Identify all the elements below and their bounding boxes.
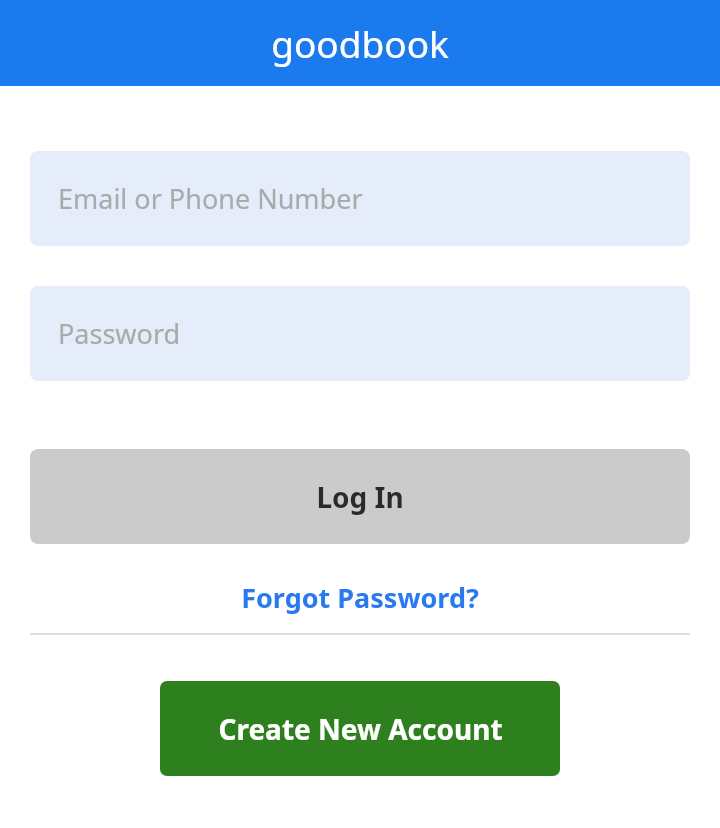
staticText: Create New Account (218, 710, 503, 748)
staticText: Forgot Password? (241, 579, 479, 616)
button[interactable]: Password (30, 286, 690, 381)
button[interactable]: Email or Phone Number (30, 151, 690, 246)
staticText: Password (58, 315, 181, 352)
button[interactable]: Forgot Password? (30, 569, 690, 625)
staticText: Email or Phone Number (58, 180, 363, 217)
staticText: Log In (316, 478, 404, 516)
button[interactable]: Log In (30, 449, 690, 544)
button[interactable]: Create New Account (160, 681, 560, 776)
staticText: goodbook (271, 18, 449, 68)
